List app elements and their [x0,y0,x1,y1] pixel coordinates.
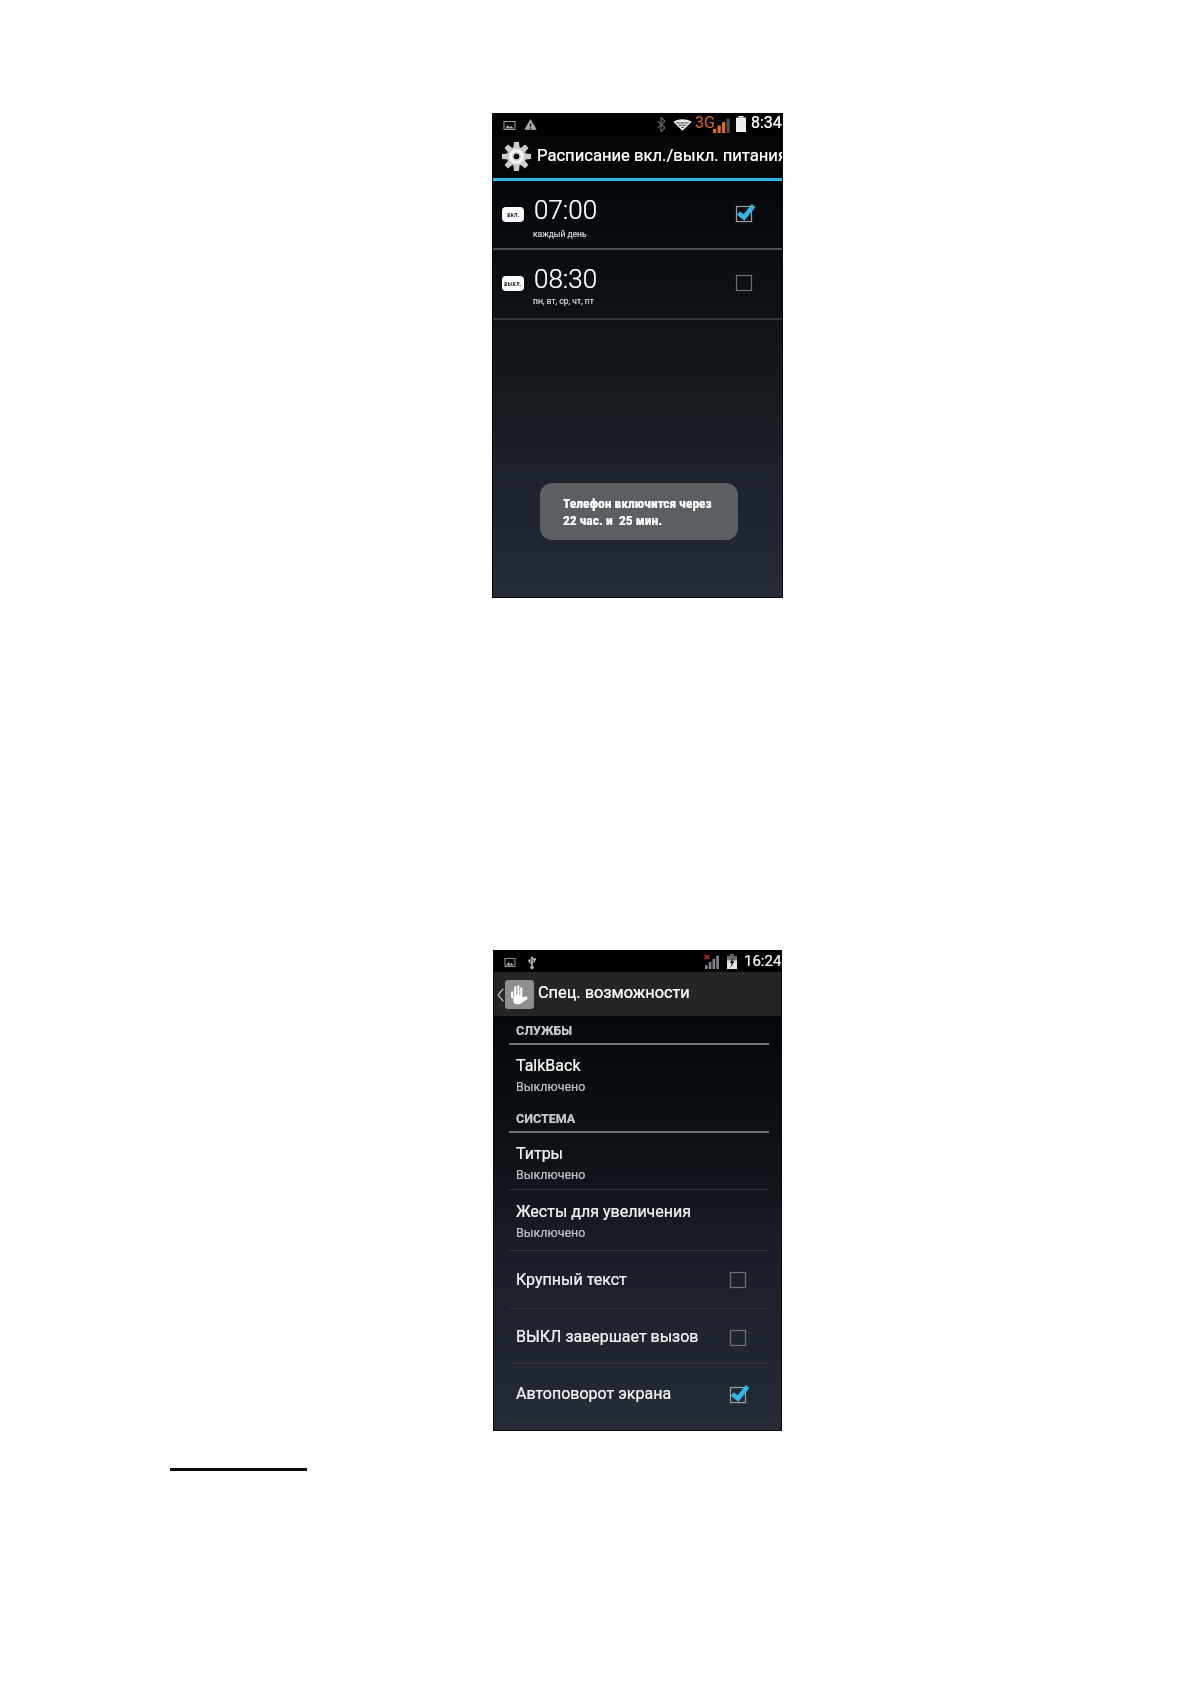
button[interactable]: Жесты для увеличения [493,1190,782,1250]
button[interactable]: Автоповорот экрана [493,1364,782,1422]
button[interactable]: Back [495,978,536,1011]
staticText: TalkBack [516,1056,581,1075]
staticText: Выключено [516,1079,586,1094]
button[interactable]: App icon, up [492,136,783,178]
staticText: 08:30 [534,264,598,294]
staticText: Жесты для увеличения [516,1202,692,1221]
button[interactable]: Disabled [729,268,759,298]
staticText: 07:00 [534,195,598,225]
button[interactable]: Титры [493,1132,782,1189]
staticText: ВЫКЛ завершает вызов [516,1327,699,1346]
button[interactable]: Крупный текст [493,1251,782,1308]
button[interactable]: Enabled [729,199,759,229]
staticText: СИСТЕМА [516,1111,576,1126]
staticText: Выключено [516,1225,586,1240]
staticText: пн, вт, ср, чт, пт [533,296,594,306]
staticText: Автоповорот экрана [516,1384,672,1403]
staticText: Расписание вкл./выкл. питания [537,146,787,165]
button[interactable]: Disabled [723,1265,753,1295]
staticText: Выключено [516,1167,586,1182]
staticText: 3G [695,113,715,132]
staticText: 8:34 [751,113,782,132]
button[interactable]: вкл. [492,181,783,248]
button[interactable]: Disabled [723,1323,753,1353]
button[interactable]: ВЫКЛ завершает вызов [493,1309,782,1363]
button[interactable]: Enabled [723,1380,753,1410]
staticText: вкл. [507,211,520,219]
button[interactable]: TalkBack [493,1044,782,1106]
staticText: каждый день [533,229,587,239]
button[interactable]: Back [493,972,782,1016]
staticText: Крупный текст [516,1270,627,1289]
staticText: 22 час. и 25 мин. [563,512,663,528]
staticText: Титры [516,1144,564,1163]
staticText: Телефон включится через [563,495,712,511]
staticText: 16:24 [744,952,782,970]
staticText: СЛУЖБЫ [516,1023,573,1038]
button[interactable]: App icon, up [502,142,531,171]
button[interactable]: выкл. [492,250,783,317]
staticText: выкл. [504,280,522,288]
staticText: Спец. возможности [538,983,690,1002]
